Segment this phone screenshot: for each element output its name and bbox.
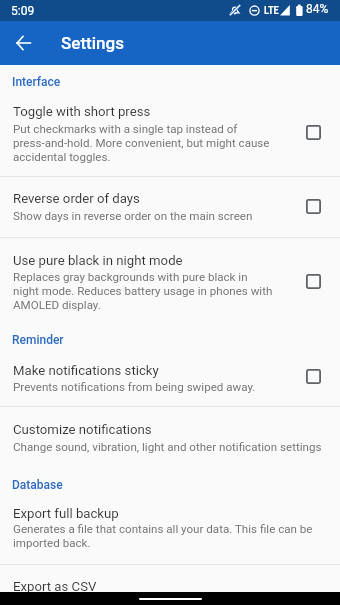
button[interactable]: Toggle with short press (0, 89, 340, 176)
staticText: LTE (264, 4, 279, 16)
button[interactable]: Reverse order of days (0, 177, 340, 237)
staticText: Toggle with short press (13, 104, 151, 119)
staticText: 84% (306, 2, 329, 16)
staticText: Settings (61, 33, 124, 53)
staticText: Interface (12, 75, 61, 89)
staticText: 5:09 (11, 4, 35, 18)
staticText: Use pure black in night mode (13, 253, 183, 268)
button[interactable]: Export as CSV (0, 565, 340, 594)
staticText: Export as CSV (13, 579, 97, 594)
button[interactable]: Use pure black in night mode (0, 238, 340, 325)
staticText: Make notifications sticky (13, 363, 159, 378)
button[interactable]: Customize notifications (0, 407, 340, 467)
staticText: Prevents notifications from being swiped… (13, 380, 256, 394)
staticText: Generates a file that contains all your … (13, 522, 313, 550)
staticText: Put checkmarks with a single tap instead… (13, 122, 270, 164)
staticText: Replaces gray backgrounds with pure blac… (13, 270, 273, 312)
button[interactable]: Back (0, 21, 44, 65)
staticText: Export full backup (13, 506, 119, 521)
staticText: Database (12, 478, 63, 492)
button[interactable]: Make notifications sticky (0, 347, 340, 406)
staticText: Change sound, vibration, light and other… (13, 440, 322, 454)
staticText: Show days in reverse order on the main s… (13, 209, 253, 223)
staticText: Customize notifications (13, 422, 152, 437)
button[interactable]: Export full backup (0, 492, 340, 564)
staticText: Reminder (12, 333, 64, 347)
staticText: Reverse order of days (13, 191, 140, 206)
